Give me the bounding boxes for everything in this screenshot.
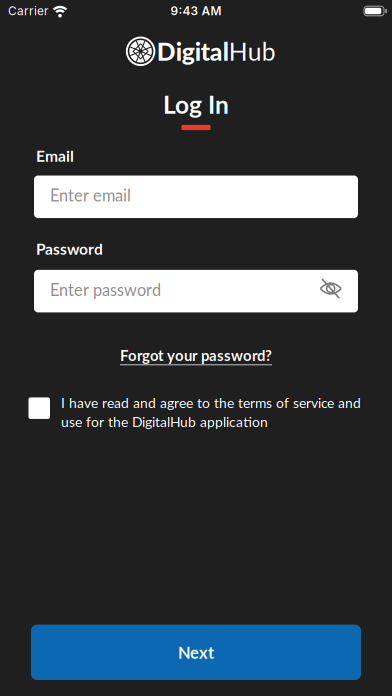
- staticText: Password: [36, 239, 103, 258]
- staticText: Enter password: [50, 280, 161, 299]
- staticText: use for the DigitalHub application: [61, 413, 268, 430]
- staticText: Next: [178, 642, 214, 662]
- staticText: Digital: [157, 36, 229, 66]
- staticText: Hub: [229, 36, 276, 66]
- staticText: I have read and agree to the terms of se…: [61, 394, 361, 411]
- staticText: Carrier: [8, 4, 48, 18]
- staticText: 9:43 AM: [170, 4, 221, 18]
- button[interactable]: Forgot your password?: [120, 346, 272, 364]
- button[interactable]: I have read and agree to the terms of se…: [0, 394, 392, 430]
- button[interactable]: Next: [31, 625, 361, 680]
- staticText: Enter email: [50, 186, 131, 205]
- button[interactable]: Show password: [319, 280, 342, 302]
- staticText: Log In: [163, 90, 229, 119]
- staticText: Forgot your password?: [120, 346, 272, 364]
- staticText: Email: [36, 146, 74, 165]
